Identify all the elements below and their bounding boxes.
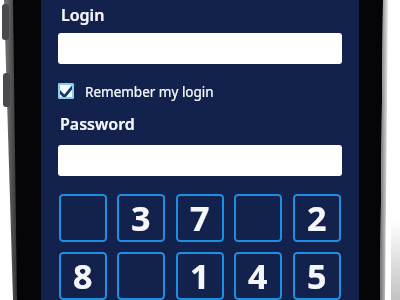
staticText: Login xyxy=(61,4,105,26)
staticText: 7 xyxy=(190,195,210,241)
staticText: 2 xyxy=(307,195,327,241)
button[interactable] xyxy=(117,252,165,300)
button[interactable]: 4 xyxy=(234,252,282,300)
button[interactable]: 1 xyxy=(176,252,224,300)
button[interactable]: 5 xyxy=(293,252,341,300)
button[interactable] xyxy=(234,194,282,242)
button[interactable]: 2 xyxy=(293,194,341,242)
button[interactable] xyxy=(58,83,74,99)
staticText: Remember my login xyxy=(85,83,214,101)
staticText: 3 xyxy=(131,195,151,241)
staticText: Password xyxy=(60,113,135,135)
button[interactable]: 8 xyxy=(59,252,107,300)
button[interactable]: 7 xyxy=(176,194,224,242)
button[interactable] xyxy=(58,145,342,176)
staticText: 8 xyxy=(73,253,93,299)
staticText: 5 xyxy=(307,253,327,299)
staticText: 4 xyxy=(248,253,268,299)
button[interactable] xyxy=(58,33,342,64)
button[interactable] xyxy=(59,194,107,242)
button[interactable]: 3 xyxy=(117,194,165,242)
staticText: 1 xyxy=(190,253,210,299)
